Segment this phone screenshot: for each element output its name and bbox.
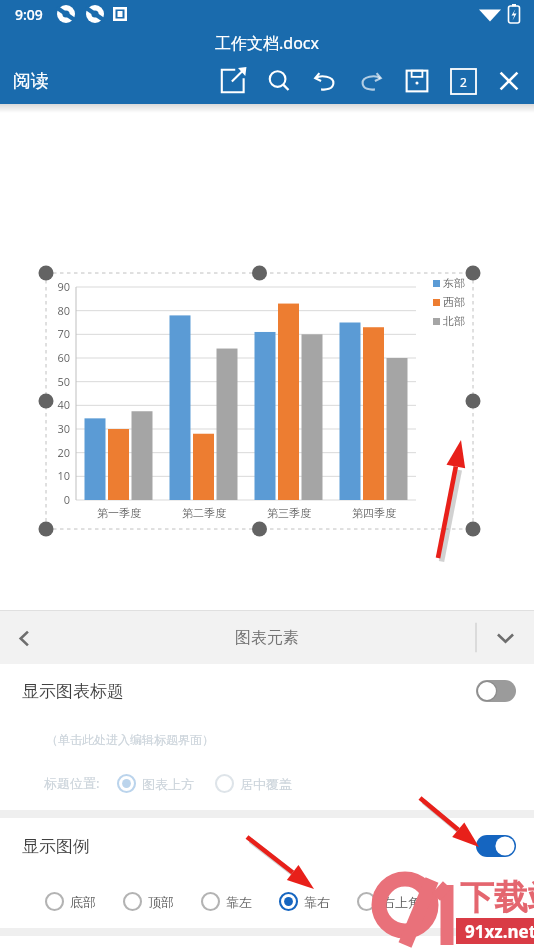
staticText: 50 <box>57 374 70 389</box>
button[interactable]: 显示图例 <box>0 818 534 874</box>
staticText: 靠右 <box>304 894 330 910</box>
staticText: 2 <box>460 74 467 90</box>
staticText: 10 <box>57 468 70 483</box>
button[interactable]: Save <box>394 58 440 104</box>
button[interactable]: 右上角 <box>356 891 421 912</box>
staticText: 0 <box>63 492 70 507</box>
button[interactable]: 图表上方 <box>116 773 194 794</box>
staticText: 60 <box>57 350 70 365</box>
button[interactable]: 靠右 <box>278 891 330 912</box>
staticText: 9:09 <box>15 5 43 24</box>
staticText: 北部 <box>443 314 465 328</box>
button[interactable]: Toggle off <box>476 680 516 702</box>
staticText: 东部 <box>443 276 465 290</box>
staticText: 第四季度 <box>352 506 396 520</box>
staticText: 工作文档.docx <box>215 32 319 54</box>
staticText: 40 <box>57 397 70 412</box>
button[interactable]: 居中覆盖 <box>214 773 292 794</box>
button[interactable]: Search <box>256 58 302 104</box>
button[interactable]: Redo <box>348 58 394 104</box>
staticText: 下载站 <box>460 876 534 919</box>
button[interactable]: Close <box>486 58 532 104</box>
button[interactable]: Share <box>210 58 256 104</box>
staticText: 第一季度 <box>97 506 141 520</box>
button[interactable]: 靠左 <box>200 891 252 912</box>
staticText: 顶部 <box>148 894 174 910</box>
staticText: 70 <box>57 326 70 341</box>
staticText: 91xz.net <box>465 920 534 943</box>
staticText: 靠左 <box>226 894 252 910</box>
staticText: 标题位置: <box>44 774 100 792</box>
button[interactable]: Page count 2 <box>440 58 486 104</box>
staticText: 20 <box>57 445 70 460</box>
staticText: 第三季度 <box>267 506 311 520</box>
staticText: 30 <box>57 421 70 436</box>
staticText: 第二季度 <box>182 506 226 520</box>
staticText: 图表上方 <box>142 776 194 792</box>
button[interactable]: 底部 <box>44 891 96 912</box>
staticText: 阅读 <box>13 70 49 93</box>
staticText: 右上角 <box>382 894 421 910</box>
button[interactable]: 顶部 <box>122 891 174 912</box>
staticText: 底部 <box>70 894 96 910</box>
staticText: 90 <box>57 279 70 294</box>
staticText: 图表元素 <box>235 628 299 648</box>
button[interactable]: Collapse <box>476 611 534 664</box>
staticText: 居中覆盖 <box>240 776 292 792</box>
staticText: 80 <box>57 303 70 318</box>
button[interactable]: Undo <box>302 58 348 104</box>
staticText: 显示图例 <box>22 836 90 857</box>
staticText: 西部 <box>443 295 465 309</box>
staticText: （单击此处进入编辑标题界面） <box>46 732 214 747</box>
button[interactable]: Back <box>0 614 48 662</box>
button[interactable]: Toggle on <box>476 835 516 857</box>
button[interactable]: 显示图表标题 <box>0 664 534 718</box>
button[interactable]: 阅读 <box>4 64 58 99</box>
staticText: 显示图表标题 <box>22 681 124 702</box>
